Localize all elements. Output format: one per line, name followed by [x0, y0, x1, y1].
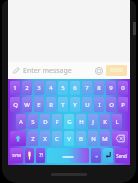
staticText: Enter message — [23, 66, 93, 76]
button[interactable]: 4 — [46, 81, 56, 95]
button[interactable]: S — [28, 114, 38, 129]
button[interactable]: U — [82, 97, 92, 112]
staticText: 4 — [49, 84, 53, 92]
button[interactable]: H — [76, 114, 86, 129]
button[interactable]: K — [100, 114, 110, 129]
staticText: V — [67, 135, 71, 143]
staticText: S — [31, 118, 35, 126]
button[interactable]: W — [22, 97, 32, 112]
button[interactable]: G — [64, 114, 74, 129]
button[interactable]: I — [94, 97, 104, 112]
staticText: I — [98, 101, 101, 109]
button[interactable]: C — [52, 131, 62, 146]
staticText: N — [91, 135, 96, 143]
staticText: G — [67, 118, 72, 126]
staticText: Z — [31, 135, 35, 143]
staticText: T — [61, 101, 65, 109]
button[interactable]: X — [40, 131, 50, 146]
button[interactable]: M — [100, 131, 110, 146]
staticText: E — [37, 101, 41, 109]
staticText: X — [43, 135, 47, 143]
staticText: 7 — [85, 84, 89, 92]
button[interactable]: Q — [10, 97, 20, 112]
button[interactable]: ., — [91, 148, 101, 163]
button[interactable]: N — [88, 131, 98, 146]
staticText: K — [103, 118, 107, 126]
staticText: F — [55, 118, 59, 126]
button[interactable]: E — [34, 97, 44, 112]
button[interactable]: 8 — [94, 81, 104, 95]
button[interactable]: Voice input — [25, 148, 34, 163]
button[interactable]: J — [88, 114, 98, 129]
staticText: O — [109, 101, 114, 109]
button[interactable]: Send — [115, 148, 128, 163]
button[interactable]: Enter — [103, 148, 113, 163]
staticText: J — [92, 118, 94, 126]
button[interactable]: O — [106, 97, 116, 112]
button[interactable]: R — [46, 97, 56, 112]
button[interactable]: Shift — [10, 131, 26, 146]
button[interactable]: 6 — [70, 81, 80, 95]
staticText: 5 — [61, 84, 65, 92]
staticText: H — [79, 118, 84, 126]
staticText: 1 — [13, 84, 17, 92]
staticText: SYM — [12, 153, 21, 159]
button[interactable]: P — [118, 97, 128, 112]
button[interactable]: 2 — [22, 81, 32, 95]
staticText: P — [121, 101, 125, 109]
button[interactable]: A — [16, 114, 26, 129]
staticText: 6 — [73, 84, 77, 92]
staticText: SEND — [110, 67, 124, 74]
staticText: B — [79, 135, 83, 143]
staticText: Send — [116, 153, 127, 159]
button[interactable]: 3 — [34, 81, 44, 95]
button[interactable]: Stickers — [93, 65, 104, 76]
staticText: U — [85, 101, 90, 109]
button[interactable]: Z — [28, 131, 38, 146]
staticText: D — [43, 118, 48, 126]
button[interactable]: 9 — [106, 81, 116, 95]
button[interactable]: 0 — [118, 81, 128, 95]
button[interactable]: Backspace — [112, 131, 128, 146]
button[interactable]: T — [58, 97, 68, 112]
button[interactable]: Y — [70, 97, 80, 112]
button[interactable]: Attach file — [11, 66, 21, 76]
button[interactable]: B — [76, 131, 86, 146]
staticText: 2 — [25, 84, 29, 92]
staticText: 8 — [97, 84, 101, 92]
staticText: ?! — [39, 152, 43, 159]
button[interactable]: Space — [47, 148, 89, 163]
staticText: R — [49, 101, 53, 109]
button[interactable]: L — [112, 114, 122, 129]
staticText: 3 — [37, 84, 41, 92]
button[interactable]: 5 — [58, 81, 68, 95]
button[interactable]: D — [40, 114, 50, 129]
button[interactable]: V — [64, 131, 74, 146]
button[interactable]: 1 — [10, 81, 20, 95]
staticText: 9 — [109, 84, 113, 92]
staticText: Y — [73, 101, 77, 109]
staticText: 0 — [121, 84, 125, 92]
button[interactable]: SYM — [10, 148, 23, 163]
staticText: C — [55, 135, 59, 143]
staticText: Q — [13, 101, 18, 109]
button[interactable]: ?! — [36, 148, 45, 163]
button[interactable]: 7 — [82, 81, 92, 95]
staticText: L — [115, 118, 119, 126]
staticText: M — [102, 135, 108, 143]
button[interactable]: SEND — [106, 65, 127, 76]
button[interactable]: F — [52, 114, 62, 129]
staticText: A — [19, 118, 23, 126]
staticText: ., — [95, 152, 98, 159]
staticText: W — [24, 101, 30, 109]
